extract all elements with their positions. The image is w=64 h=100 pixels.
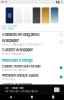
staticText: protection Mode [2,68,27,72]
button[interactable]: Premium unlock status [0,72,64,82]
staticText: Capture wallpaper from online [2,87,45,90]
staticText: Enable Protection Mode [2,64,41,68]
button[interactable]: Wallpaper preview [15,7,22,23]
staticText: Custom Wallpaper [2,48,33,52]
staticText: Get the best live wallpapers [4,90,37,93]
button[interactable]: Wallpaper preview [42,7,49,23]
button[interactable]: Custom Wallpaper [0,47,64,56]
button[interactable]: Back [0,95,21,100]
button[interactable]: Vibration on long press [0,31,64,38]
staticText: AD · Install now [4,86,23,90]
staticText: Protection Settings [2,58,33,63]
button[interactable]: Home [21,95,43,100]
button[interactable]: Wallpaper preview [24,7,31,23]
staticText: ✓ [59,49,62,54]
button[interactable]: Wallpaper [0,38,64,47]
staticText: Select Wallpaper from gallery [2,43,43,46]
staticText: select wallpaper [2,52,25,55]
staticText: SET HERE [1,27,13,30]
button[interactable]: Wallpaper preview [51,7,58,23]
staticText: ◀ [9,96,12,99]
staticText: Premium unlock status [2,73,39,78]
button[interactable]: Unlock Wallpaper [0,82,64,91]
button[interactable]: AD · Install now [0,84,64,95]
staticText: ■ [52,96,55,99]
button[interactable]: Recents [43,95,64,100]
staticText: unlocked [2,78,16,81]
staticText: Vibration on long press [2,32,40,37]
staticText: ✉ ▾ [1,0,7,4]
button[interactable]: Current wallpaper preview [6,7,13,23]
button[interactable]: Wallpaper preview [33,7,40,23]
staticText: ▮▮ ▯ [56,0,63,4]
staticText: LIVE SCREEN [1,24,17,27]
staticText: Unlock Wallpaper [2,82,32,87]
staticText: Wallpaper [2,38,19,43]
button[interactable]: Enable Protection Mode [0,63,64,72]
staticText: ● [30,96,33,99]
